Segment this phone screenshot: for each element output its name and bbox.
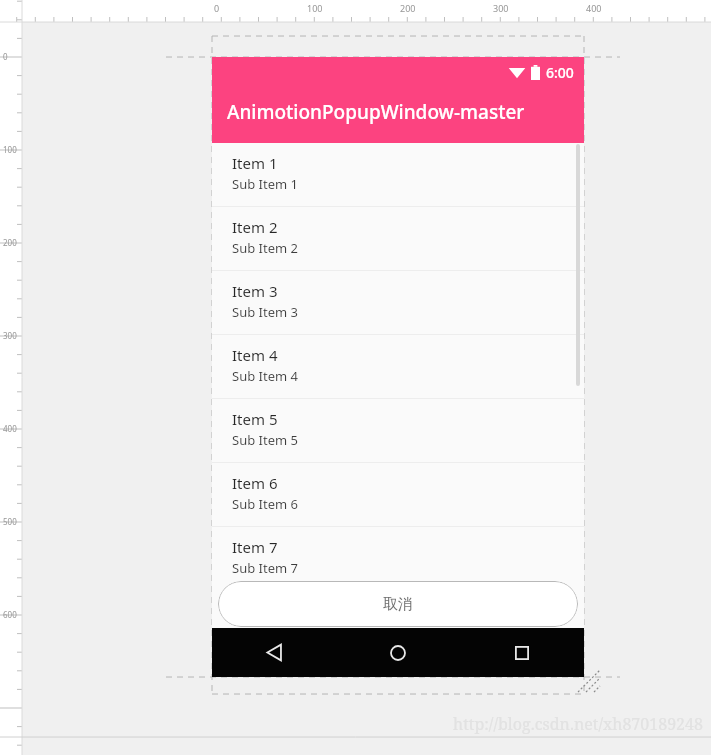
staticText: Item 2: [232, 217, 278, 237]
staticText: Item 7: [232, 537, 278, 557]
staticText: 取消: [383, 595, 413, 614]
button[interactable]: Item 1: [212, 143, 584, 206]
button[interactable]: Recent apps: [460, 628, 584, 677]
staticText: Item 4: [232, 345, 278, 365]
staticText: Item 1: [232, 153, 278, 173]
staticText: 300: [493, 2, 509, 14]
button[interactable]: 取消: [218, 581, 578, 627]
button[interactable]: Item 2: [212, 207, 584, 270]
staticText: Item 5: [232, 409, 278, 429]
button[interactable]: Item 5: [212, 399, 584, 462]
staticText: 200: [400, 2, 416, 14]
staticText: Item 3: [232, 281, 278, 301]
staticText: Sub Item 4: [232, 367, 298, 385]
staticText: 0: [214, 2, 220, 14]
staticText: 200: [3, 237, 17, 248]
staticText: 300: [3, 330, 17, 341]
staticText: Sub Item 2: [232, 239, 298, 257]
staticText: 400: [3, 423, 17, 434]
staticText: 100: [307, 2, 323, 14]
staticText: http://blog.csdn.net/xh870189248: [453, 713, 703, 735]
staticText: 100: [3, 144, 17, 155]
staticText: Sub Item 1: [232, 175, 298, 193]
button[interactable]: Item 6: [212, 463, 584, 526]
button[interactable]: Item 4: [212, 335, 584, 398]
button[interactable]: Home: [336, 628, 460, 677]
staticText: Sub Item 6: [232, 495, 298, 513]
staticText: Sub Item 3: [232, 303, 298, 321]
staticText: Item 6: [232, 473, 278, 493]
staticText: 0: [3, 51, 8, 62]
staticText: AnimotionPopupWindow-master: [227, 99, 525, 125]
staticText: Sub Item 7: [232, 559, 298, 577]
staticText: 6:00: [546, 63, 574, 82]
staticText: 600: [3, 609, 17, 620]
button[interactable]: Back: [212, 628, 336, 677]
staticText: Sub Item 5: [232, 431, 298, 449]
staticText: 400: [586, 2, 602, 14]
button[interactable]: Item 7: [212, 527, 584, 580]
button[interactable]: Item 3: [212, 271, 584, 334]
staticText: 500: [3, 516, 17, 527]
